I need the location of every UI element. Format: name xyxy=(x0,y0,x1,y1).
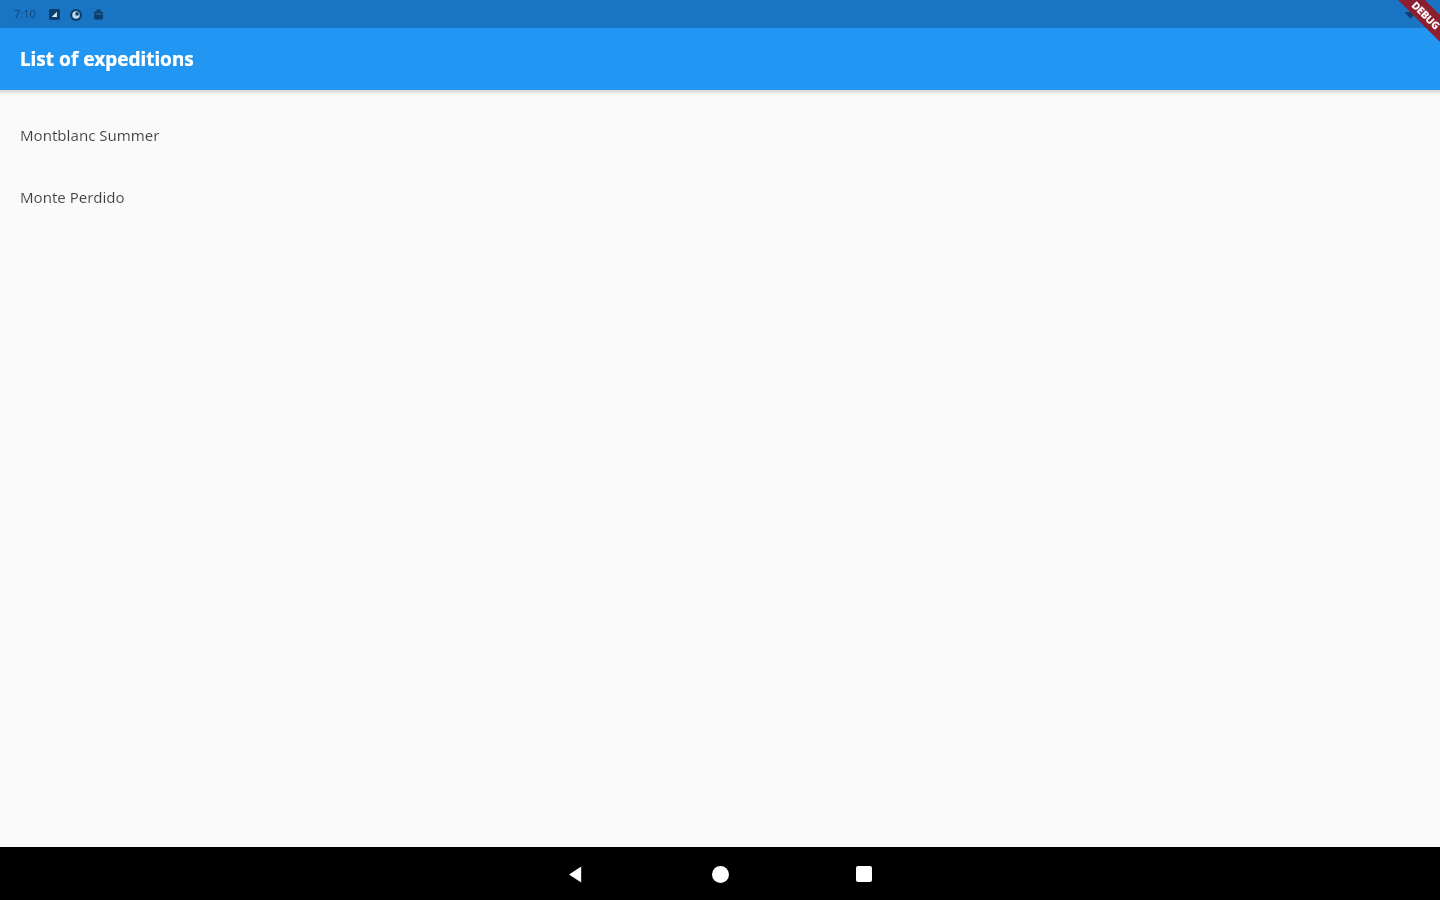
staticText: List of expeditions xyxy=(20,46,194,72)
button[interactable]: Home xyxy=(696,850,744,898)
staticText: Montblanc Summer xyxy=(20,125,160,145)
button[interactable]: Montblanc Summer xyxy=(0,104,1440,166)
staticText: 7:10 xyxy=(14,6,36,21)
button[interactable]: Monte Perdido xyxy=(0,166,1440,228)
staticText: Monte Perdido xyxy=(20,187,125,207)
button[interactable]: Back xyxy=(551,850,599,898)
staticText: DEBUG xyxy=(1409,0,1440,32)
button[interactable]: Recent apps xyxy=(840,850,888,898)
